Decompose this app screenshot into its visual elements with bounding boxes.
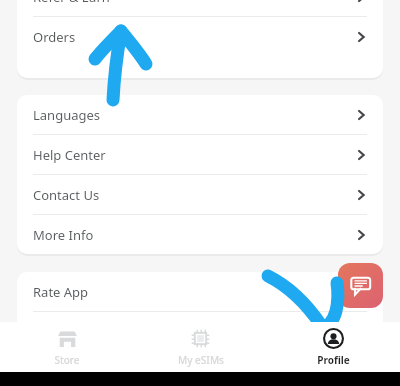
staticText: Refer & Earn xyxy=(33,0,110,6)
button[interactable]: Languages xyxy=(17,95,383,134)
button[interactable]: Profile xyxy=(267,322,400,372)
staticText: Contact Us xyxy=(33,186,100,204)
staticText: Profile xyxy=(317,353,350,367)
staticText: My eSIMs xyxy=(178,353,224,367)
button[interactable]: More Info xyxy=(17,215,383,254)
button[interactable]: Rate App xyxy=(17,272,383,311)
staticText: Rate App xyxy=(33,283,89,301)
button[interactable]: Contact Us xyxy=(17,175,383,214)
button[interactable]: My eSIMs xyxy=(134,322,267,372)
staticText: Store xyxy=(54,353,80,367)
staticText: Languages xyxy=(33,106,101,124)
staticText: Help Center xyxy=(33,146,106,164)
button[interactable]: Orders xyxy=(17,17,383,56)
button[interactable] xyxy=(17,312,383,351)
button[interactable]: Open chat support xyxy=(338,263,383,308)
button[interactable]: Refer & Earn xyxy=(17,0,383,16)
button[interactable]: Help Center xyxy=(17,135,383,174)
staticText: More Info xyxy=(33,226,94,244)
staticText: Orders xyxy=(33,28,76,46)
button[interactable]: Store xyxy=(0,322,134,372)
